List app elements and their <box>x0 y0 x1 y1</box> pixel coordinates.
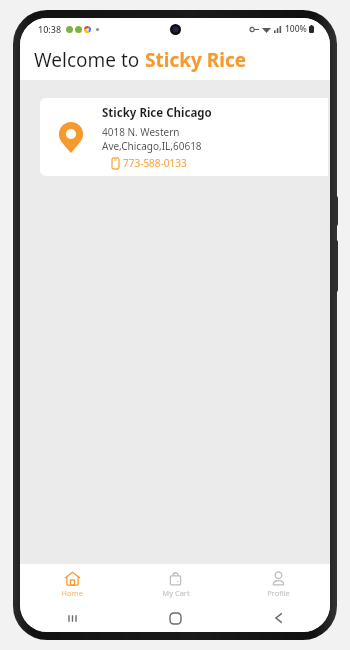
button[interactable]: 773-588-0133 <box>112 156 187 170</box>
staticText: My Cart <box>162 588 190 598</box>
staticText: 100% <box>285 23 307 35</box>
staticText: Ave,Chicago,IL,60618 <box>102 139 202 153</box>
staticText: 10:38 <box>38 23 62 35</box>
button[interactable]: My Cart <box>124 567 227 602</box>
staticText: 4018 N. Western <box>102 125 180 139</box>
button[interactable]: Home <box>124 604 227 632</box>
button[interactable]: Back <box>227 604 330 632</box>
button[interactable]: Sticky Rice Chicago <box>40 98 328 176</box>
staticText: Welcome to <box>34 47 145 73</box>
staticText: Sticky Rice Chicago <box>102 105 212 121</box>
button[interactable]: Home <box>20 567 124 602</box>
staticText: Sticky Rice <box>145 47 247 73</box>
button[interactable]: Profile <box>227 567 330 602</box>
staticText: Home <box>61 588 83 598</box>
button[interactable]: Recent apps <box>20 604 124 632</box>
staticText: Profile <box>267 588 290 598</box>
staticText: 773-588-0133 <box>123 156 187 170</box>
